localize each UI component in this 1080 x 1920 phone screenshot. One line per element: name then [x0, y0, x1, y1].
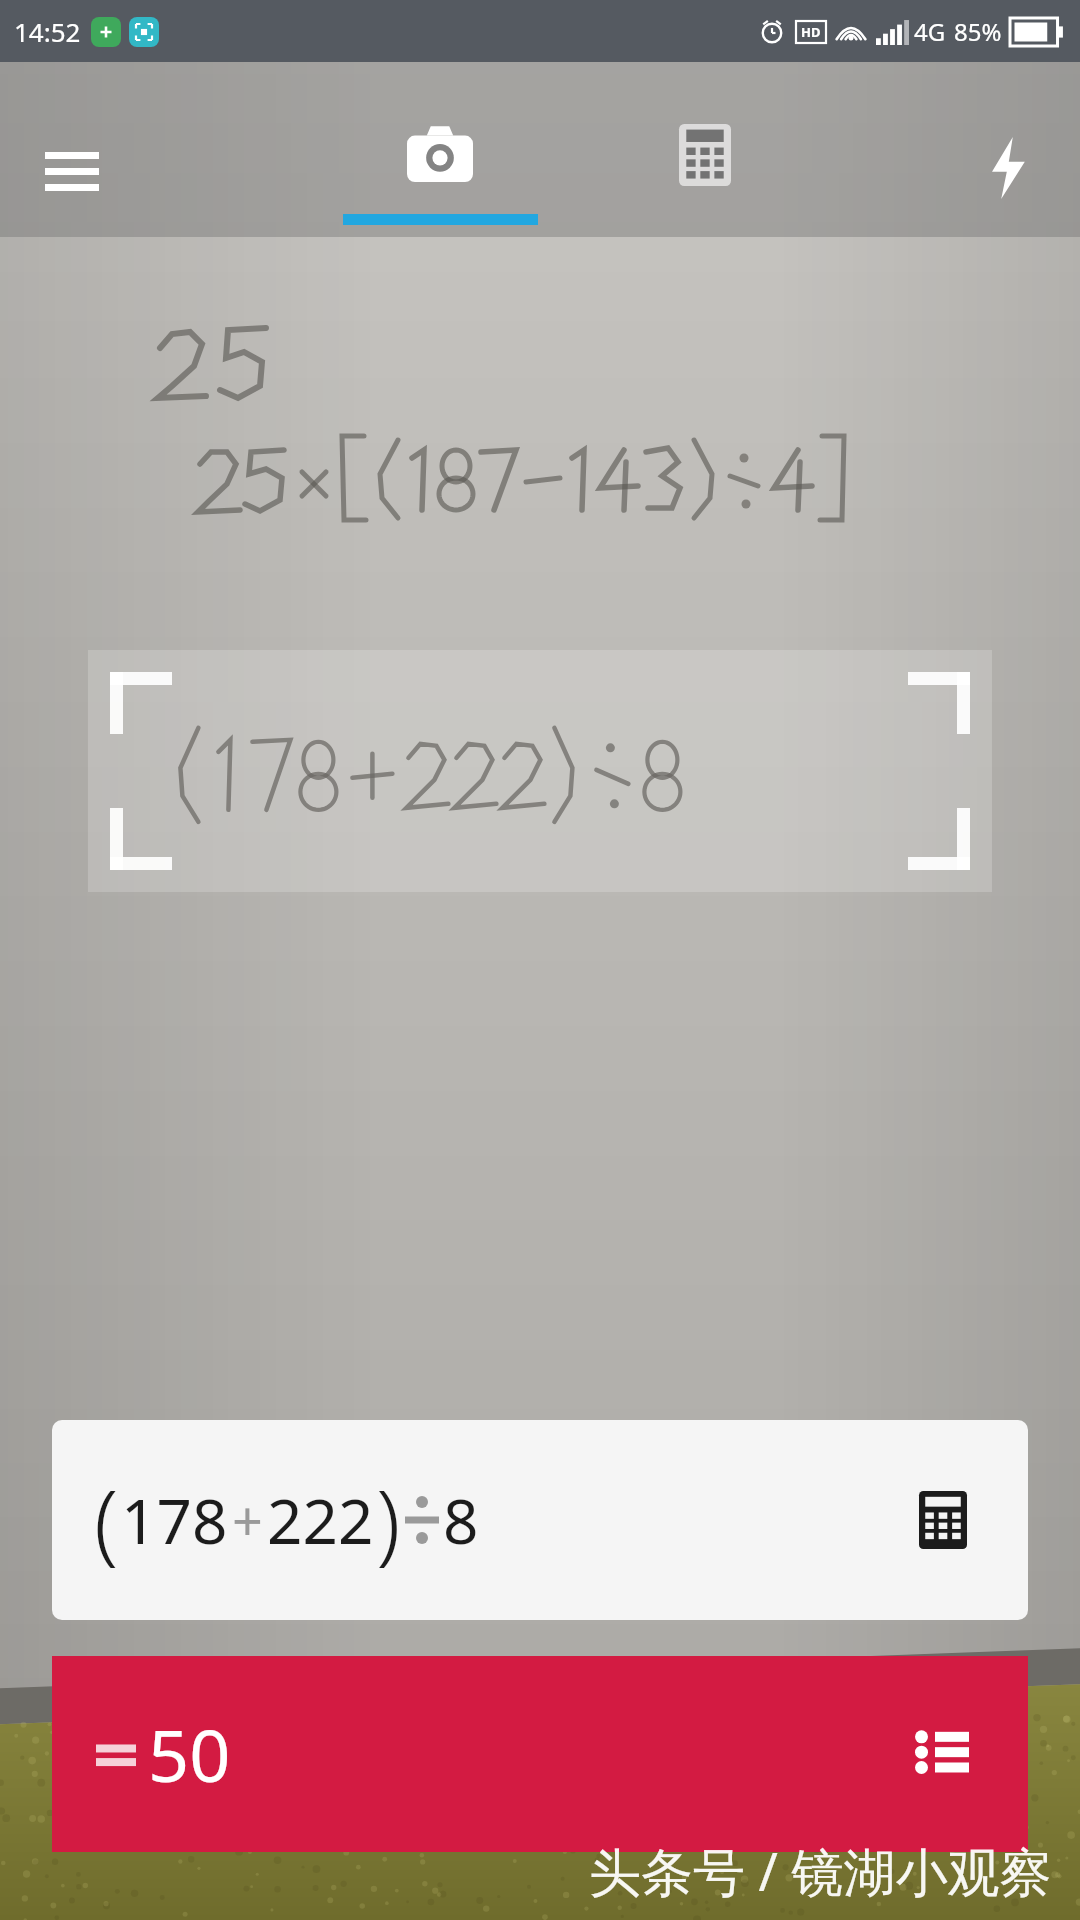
button[interactable]: Flash — [976, 136, 1040, 200]
button[interactable]: 50 — [52, 1656, 1028, 1852]
button[interactable]: Show steps — [902, 1714, 982, 1794]
staticText: 178 — [121, 1478, 228, 1562]
staticText: 222 — [267, 1478, 374, 1562]
button[interactable]: Calculator — [670, 124, 740, 194]
staticText: 14:52 — [14, 14, 81, 49]
staticText: ) — [376, 1460, 401, 1580]
staticText: 4G — [914, 15, 946, 48]
button[interactable]: Menu — [40, 140, 104, 204]
staticText: ( — [94, 1460, 119, 1580]
staticText: 8 — [443, 1478, 479, 1562]
staticText: 85% — [954, 15, 1002, 48]
button[interactable]: Camera — [340, 124, 540, 225]
staticText: + — [232, 1483, 263, 1557]
staticText: 头条号 / 镜湖小观察 — [589, 1835, 1052, 1906]
staticText: HD — [801, 23, 821, 41]
button[interactable]: Open calculator — [904, 1481, 982, 1559]
staticText: 50 — [148, 1705, 231, 1803]
button[interactable]: ( — [52, 1420, 1028, 1620]
